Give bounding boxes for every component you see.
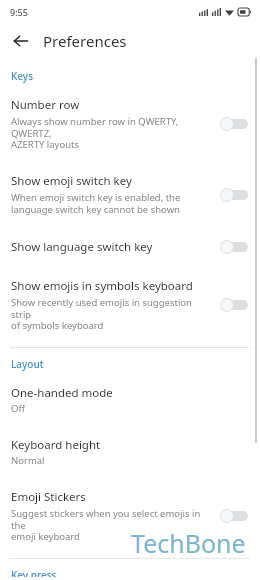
staticText: Normal (11, 454, 45, 467)
button[interactable]: Emoji Stickers (0, 478, 260, 554)
button[interactable]: Show language switch key (0, 227, 260, 267)
staticText: Keyboard height (11, 437, 101, 453)
staticText: Suggest stickers when you select emojis … (11, 507, 212, 543)
button[interactable]: Toggle (220, 296, 250, 314)
staticText: One-handed mode (11, 385, 113, 401)
staticText: Emoji Stickers (11, 489, 86, 505)
button[interactable]: Show emoji switch key (0, 162, 260, 227)
staticText: When emoji switch key is enabled, the la… (11, 191, 181, 216)
staticText: Show emojis in symbols keyboard (11, 278, 193, 294)
button[interactable]: Toggle (220, 238, 250, 256)
button[interactable]: Toggle (220, 186, 250, 204)
staticText: Always show number row in QWERTY, QWERTZ… (11, 115, 212, 151)
button[interactable]: Back (5, 25, 37, 57)
button[interactable]: One-handed mode (0, 374, 260, 426)
button[interactable]: Show emojis in symbols keyboard (0, 267, 260, 343)
staticText: Layout (11, 357, 44, 371)
staticText: Number row (11, 97, 80, 113)
button[interactable]: Toggle (220, 507, 250, 525)
button[interactable]: Number row (0, 86, 260, 162)
staticText: Key press (11, 568, 57, 577)
staticText: Off (11, 402, 25, 415)
staticText: Show emoji switch key (11, 173, 132, 189)
staticText: TechBone (131, 526, 246, 560)
staticText: 9:55 (10, 6, 28, 18)
staticText: Show language switch key (11, 239, 153, 255)
staticText: Preferences (43, 31, 127, 51)
staticText: Keys (11, 69, 33, 83)
button[interactable]: Toggle (220, 115, 250, 133)
button[interactable]: Keyboard height (0, 426, 260, 478)
staticText: Show recently used emojis in suggestion … (11, 296, 212, 332)
